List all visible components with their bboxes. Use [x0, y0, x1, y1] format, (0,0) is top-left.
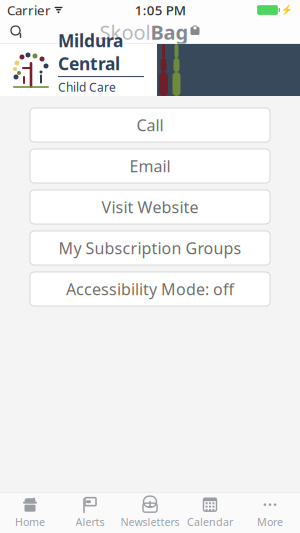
- staticText: Skool: [99, 19, 150, 45]
- staticText: Home: [15, 515, 45, 529]
- staticText: Call: [136, 114, 163, 136]
- staticText: 1:05 PM: [135, 1, 186, 19]
- button[interactable]: Accessibility Mode: off: [30, 272, 270, 306]
- button[interactable]: Search: [0, 20, 34, 44]
- staticText: Child Care Centre: [58, 79, 116, 111]
- button[interactable]: Newsletters: [120, 493, 180, 533]
- staticText: Newsletters: [120, 515, 179, 529]
- button[interactable]: Email: [30, 149, 270, 183]
- staticText: Calendar: [187, 515, 233, 529]
- staticText: Alerts: [75, 515, 104, 529]
- staticText: ⚡: [281, 5, 293, 15]
- button[interactable]: Call: [30, 108, 270, 142]
- button[interactable]: More: [240, 493, 300, 533]
- button[interactable]: Visit Website: [30, 190, 270, 224]
- staticText: Accessibility Mode: off: [66, 278, 234, 300]
- staticText: My Subscription Groups: [58, 237, 241, 259]
- button[interactable]: My Subscription Groups: [30, 231, 270, 265]
- button[interactable]: Alerts: [60, 493, 120, 533]
- staticText: Email: [129, 155, 170, 177]
- staticText: Visit Website: [101, 196, 198, 218]
- staticText: Bag: [150, 19, 188, 45]
- button[interactable]: Home: [0, 493, 60, 533]
- staticText: Carrier: [7, 1, 51, 19]
- button[interactable]: Calendar: [180, 493, 240, 533]
- staticText: Mildura Central: [58, 29, 123, 75]
- staticText: More: [257, 515, 283, 529]
